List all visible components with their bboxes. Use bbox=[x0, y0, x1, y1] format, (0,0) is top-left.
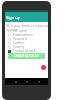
button[interactable]: Password bbox=[8, 37, 45, 41]
button[interactable]: Confirm bbox=[8, 41, 45, 45]
staticText: Confirm bbox=[13, 41, 25, 45]
button[interactable]: Full name bbox=[8, 29, 45, 33]
button[interactable]: Add bbox=[41, 65, 46, 70]
button[interactable]: CREATE ACCOUNT bbox=[8, 53, 45, 59]
staticText: Country bbox=[13, 45, 25, 49]
staticText: Full name bbox=[13, 29, 27, 33]
staticText: Password bbox=[13, 37, 27, 41]
button[interactable]: Email address bbox=[8, 33, 45, 37]
button[interactable]: I accept terms & conditions bbox=[8, 49, 45, 53]
button[interactable]: Country bbox=[8, 45, 45, 49]
staticText: Fill in your details to create an accoun… bbox=[6, 24, 49, 32]
staticText: Sign up bbox=[6, 15, 21, 20]
staticText: CREATE ACCOUNT bbox=[14, 54, 40, 58]
staticText: I accept terms & conditions bbox=[13, 49, 45, 53]
staticText: Email address bbox=[13, 33, 33, 37]
button[interactable]: Recents bbox=[37, 80, 40, 83]
button[interactable]: Home bbox=[25, 80, 28, 83]
button[interactable]: Back bbox=[14, 80, 17, 83]
